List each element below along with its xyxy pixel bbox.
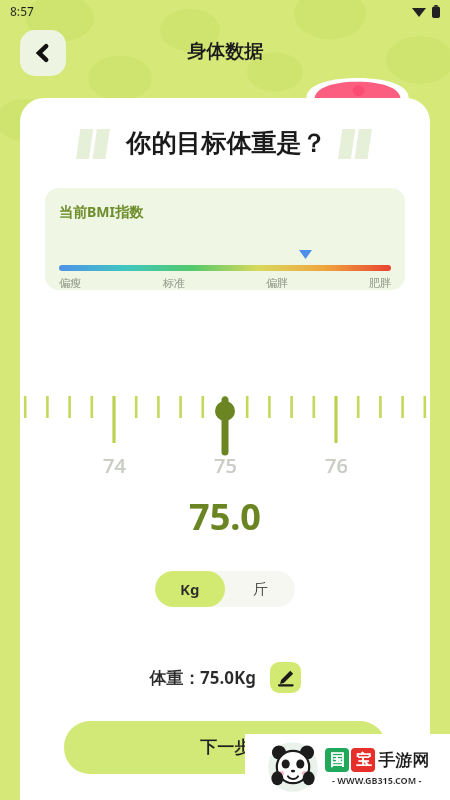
staticText: 体重：75.0Kg	[149, 666, 256, 689]
staticText: 偏瘦	[59, 276, 81, 290]
staticText: 偏胖	[266, 276, 288, 290]
staticText: 国	[330, 751, 345, 770]
staticText: 8:57	[10, 3, 34, 19]
staticText: 74	[103, 452, 126, 479]
staticText: 标准	[163, 276, 185, 290]
staticText: 76	[325, 452, 348, 479]
staticText: 75	[214, 452, 237, 479]
staticText: 手游网	[378, 750, 429, 771]
staticText: 肥胖	[369, 276, 391, 290]
staticText: 当前BMI指数	[59, 202, 143, 221]
button[interactable]: Edit weight	[270, 662, 301, 693]
staticText: 75.0	[189, 492, 261, 541]
staticText: 下一步	[200, 737, 251, 758]
staticText: 宝	[356, 751, 371, 770]
button[interactable]: Kg	[155, 571, 225, 607]
button[interactable]: 下一步	[64, 721, 386, 774]
staticText: 你的目标体重是？	[126, 128, 326, 159]
button[interactable]: Back	[20, 30, 66, 76]
staticText: Kg	[180, 579, 200, 599]
staticText: - WWW.GB315.COM -	[332, 774, 422, 786]
staticText: 身体数据	[187, 40, 263, 64]
staticText: 斤	[253, 580, 268, 599]
button[interactable]: 斤	[225, 571, 295, 607]
